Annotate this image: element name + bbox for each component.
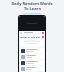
staticText: To Learn xyxy=(24,6,41,11)
button[interactable] xyxy=(23,13,42,16)
button[interactable]: More xyxy=(42,36,44,38)
button[interactable] xyxy=(21,39,43,47)
button[interactable] xyxy=(20,66,44,71)
button[interactable] xyxy=(20,48,44,53)
staticText: Daily Random Words xyxy=(11,1,53,6)
staticText: Words of the day xyxy=(20,35,41,38)
button[interactable] xyxy=(20,60,44,65)
button[interactable] xyxy=(20,54,44,59)
